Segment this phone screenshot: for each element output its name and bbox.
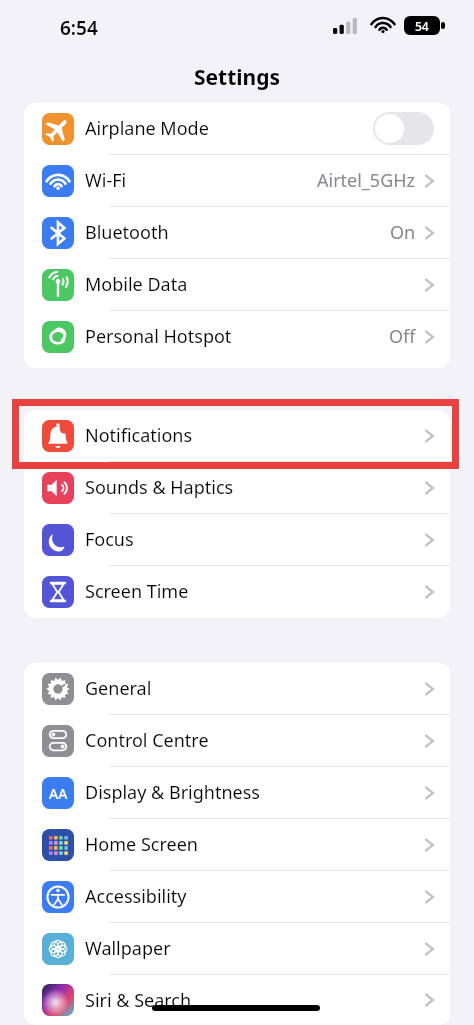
button[interactable]: Notifications: [24, 410, 450, 461]
button[interactable]: Siri & Search: [24, 975, 450, 1025]
button[interactable]: AA: [24, 767, 450, 818]
button[interactable]: Sounds & Haptics: [24, 462, 450, 513]
button[interactable]: Accessibility: [24, 871, 450, 922]
staticText: Display & Brightness: [85, 780, 260, 805]
button[interactable]: Wi-Fi: [24, 155, 450, 206]
staticText: Notifications: [85, 423, 193, 448]
staticText: Control Centre: [85, 728, 209, 753]
button[interactable]: Airplane Mode: [24, 103, 450, 154]
staticText: Airtel_5GHz: [317, 168, 416, 193]
staticText: Siri & Search: [85, 988, 192, 1013]
button[interactable]: Bluetooth: [24, 207, 450, 258]
staticText: Mobile Data: [85, 272, 188, 297]
staticText: On: [390, 220, 416, 245]
staticText: Wallpaper: [85, 936, 171, 961]
staticText: 6:54: [60, 15, 98, 41]
staticText: Accessibility: [85, 884, 187, 909]
staticText: Home Screen: [85, 832, 198, 857]
button[interactable]: Personal Hotspot: [24, 311, 450, 362]
staticText: Screen Time: [85, 579, 189, 604]
staticText: Personal Hotspot: [85, 324, 232, 349]
staticText: Wi-Fi: [85, 168, 127, 193]
button[interactable]: Screen Time: [24, 566, 450, 617]
button[interactable]: Focus: [24, 514, 450, 565]
staticText: Focus: [85, 527, 134, 552]
button[interactable]: Wallpaper: [24, 923, 450, 974]
button[interactable]: Airplane Mode toggle: [373, 112, 434, 145]
button[interactable]: Home Screen: [24, 819, 450, 870]
staticText: General: [85, 676, 152, 701]
staticText: AA: [49, 784, 68, 803]
staticText: Bluetooth: [85, 220, 169, 245]
button[interactable]: Control Centre: [24, 715, 450, 766]
staticText: Sounds & Haptics: [85, 475, 234, 500]
staticText: 54: [415, 18, 429, 34]
staticText: Settings: [0, 63, 474, 92]
staticText: Airplane Mode: [85, 116, 209, 141]
staticText: Off: [389, 324, 416, 349]
button[interactable]: Mobile Data: [24, 259, 450, 310]
button[interactable]: General: [24, 663, 450, 714]
